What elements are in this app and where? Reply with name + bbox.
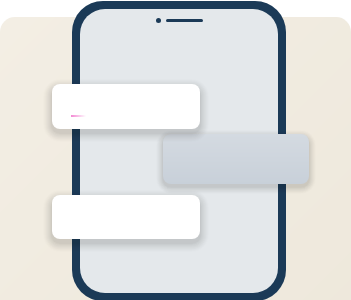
button[interactable]: Notification card bbox=[163, 134, 309, 184]
button[interactable]: Message card bbox=[52, 84, 200, 129]
button[interactable]: Message card bbox=[52, 195, 200, 239]
